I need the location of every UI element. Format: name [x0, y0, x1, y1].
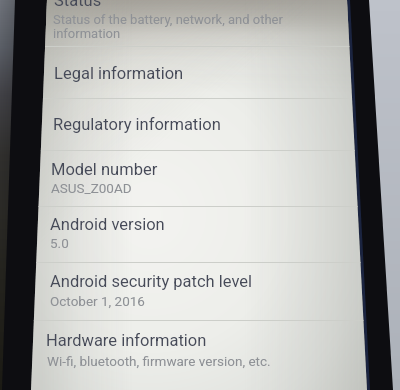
staticText: Wi-fi, bluetooth, firmware version, etc.	[47, 353, 271, 369]
staticText: October 1, 2016	[50, 293, 145, 309]
staticText: Hardware information	[46, 331, 207, 350]
button[interactable]: Legal information	[0, 46, 400, 98]
button[interactable]: Model number	[0, 150, 400, 206]
staticText: ASUS_Z00AD	[51, 180, 132, 196]
button[interactable]: Status	[0, 0, 400, 46]
staticText: 5.0	[50, 235, 69, 251]
staticText: Status of the battery, network, and othe…	[53, 12, 283, 27]
staticText: Model number	[51, 160, 158, 179]
button[interactable]: Android version	[0, 206, 400, 262]
button[interactable]: Regulatory information	[0, 98, 400, 150]
staticText: Legal information	[54, 64, 184, 83]
staticText: Regulatory information	[53, 115, 221, 134]
staticText: Android security patch level	[50, 272, 253, 291]
staticText: Status	[54, 0, 102, 10]
staticText: Android version	[50, 215, 165, 234]
staticText: information	[53, 26, 121, 41]
button[interactable]: Android security patch level	[0, 262, 400, 320]
button[interactable]: Hardware information	[0, 320, 400, 390]
